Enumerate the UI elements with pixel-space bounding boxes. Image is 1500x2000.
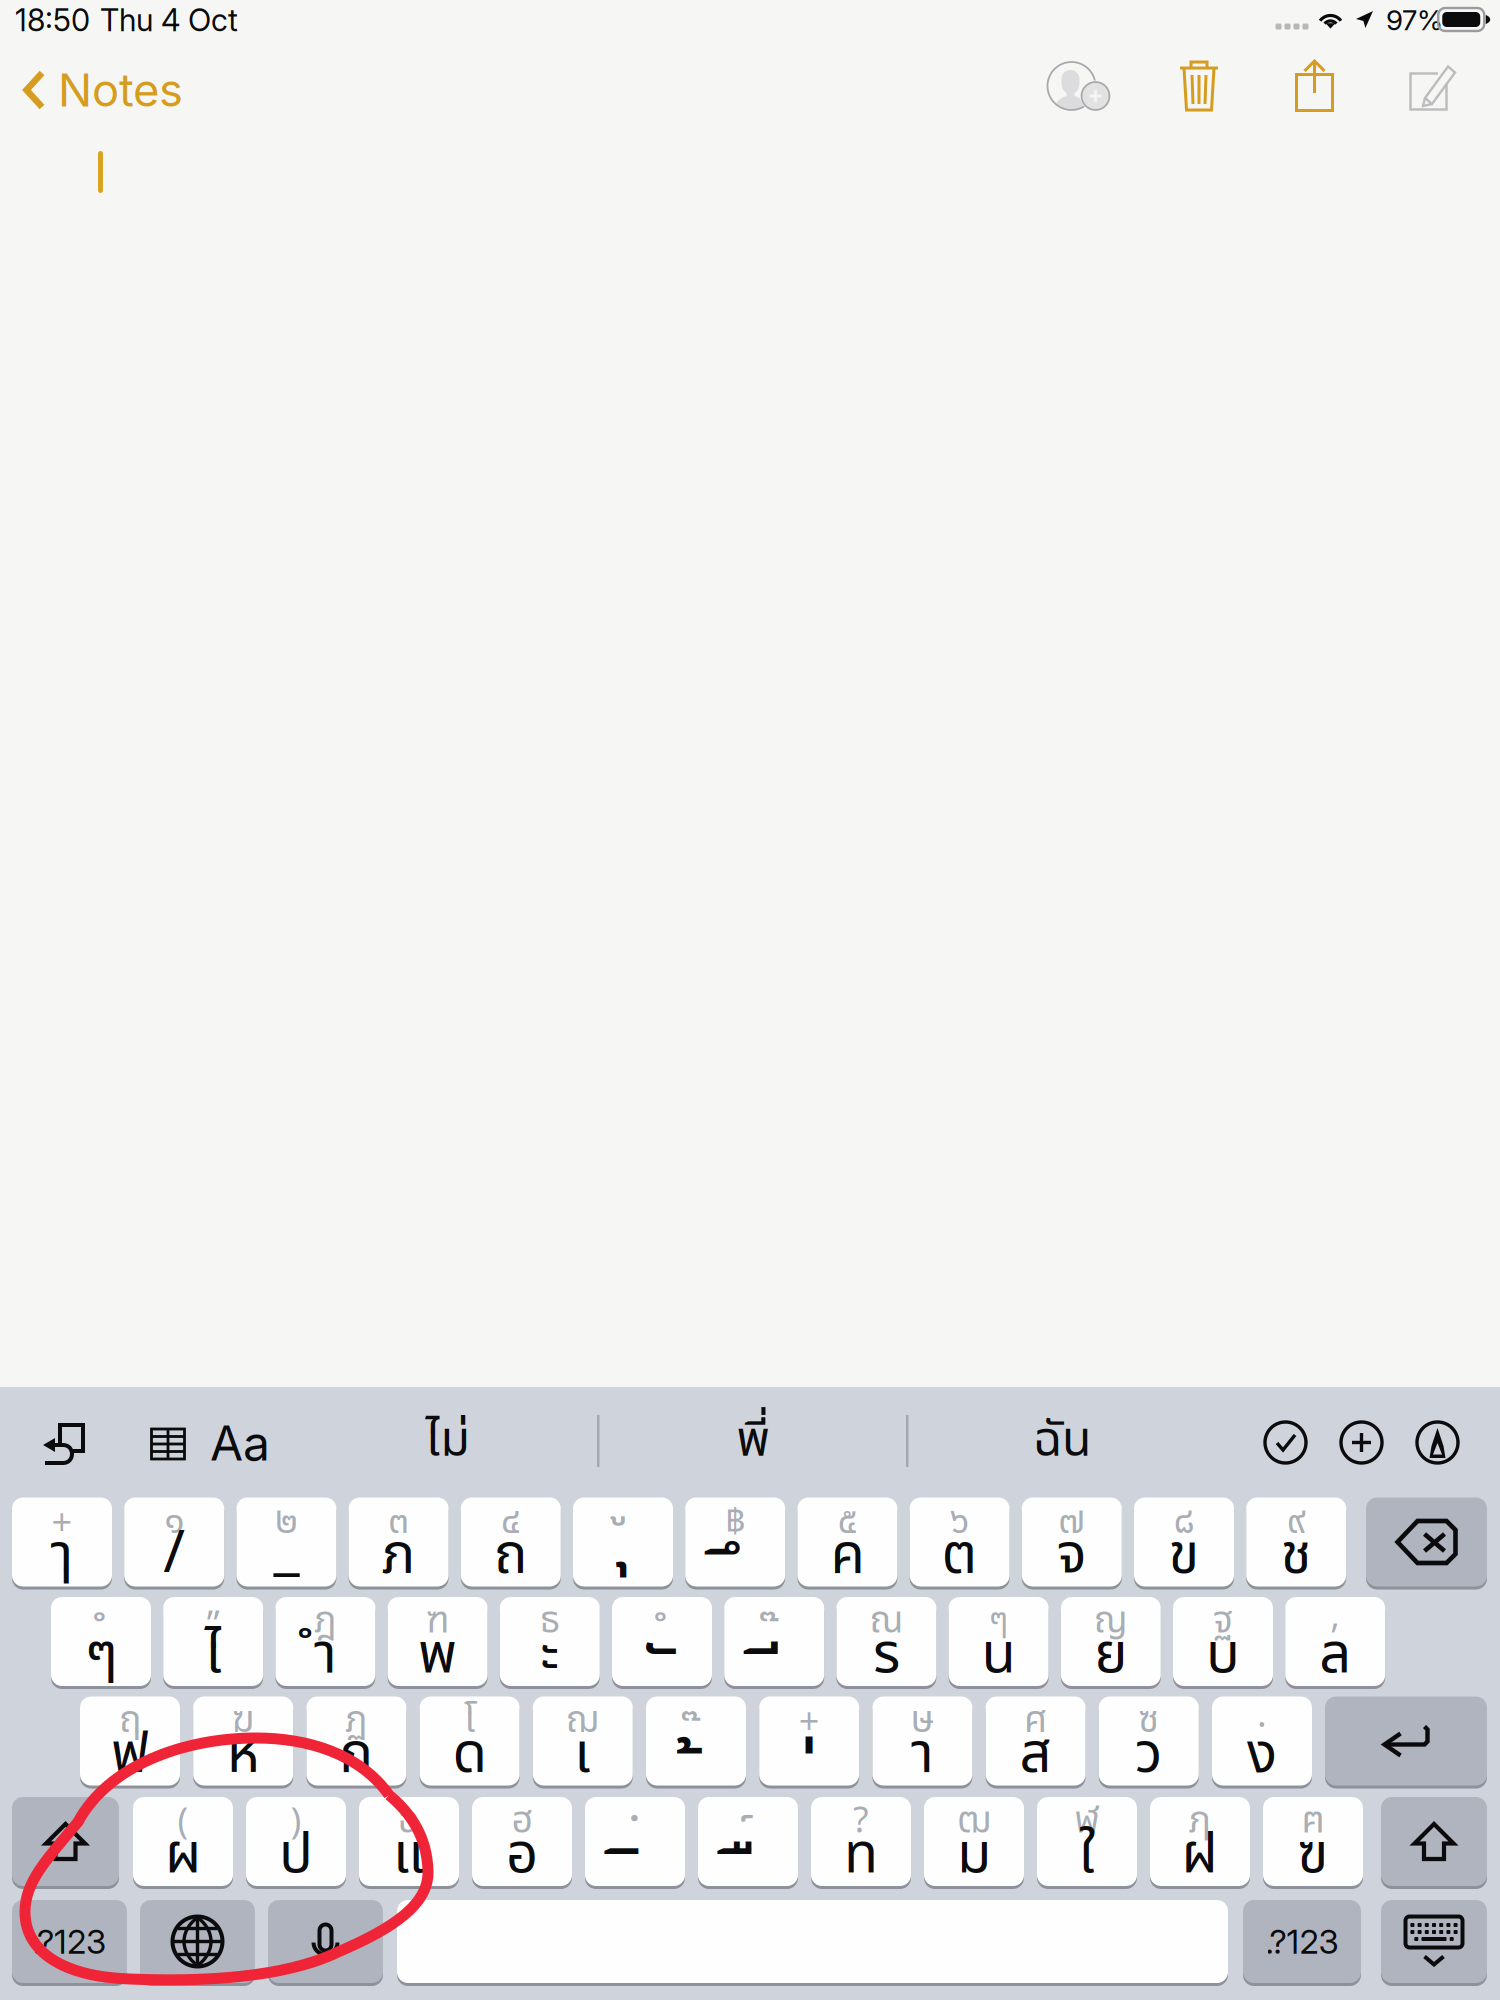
button[interactable]: ฝ [1150, 1797, 1250, 1886]
button[interactable]: ต [910, 1497, 1010, 1586]
staticText: ฮ [511, 1793, 532, 1849]
staticText: ฑ [426, 1593, 449, 1649]
button[interactable]: แ [359, 1797, 459, 1886]
staticText: ไ [205, 1613, 222, 1697]
button[interactable]: Numbers [1243, 1900, 1361, 1983]
staticText: ้ [685, 1720, 706, 1840]
button[interactable]: น [949, 1597, 1049, 1686]
button[interactable]: Table [150, 1426, 186, 1462]
button[interactable]: เ [533, 1696, 633, 1785]
staticText: พ [418, 1613, 457, 1697]
button[interactable]: Delete [1179, 60, 1219, 112]
staticText: ฎ [314, 1593, 337, 1649]
button[interactable]: พี่ [600, 1408, 906, 1474]
button[interactable]: Share [1295, 60, 1334, 112]
button[interactable]: ี [724, 1597, 824, 1686]
staticText: ) [290, 1795, 301, 1850]
button[interactable]: Undo [43, 1423, 85, 1465]
staticText: จ [1057, 1513, 1087, 1598]
button[interactable]: Checklist [1265, 1422, 1306, 1463]
staticText: ย [1094, 1613, 1127, 1697]
button[interactable]: Markup [1417, 1422, 1458, 1463]
button[interactable]: Text Format [210, 1420, 280, 1466]
button[interactable]: ย [1061, 1597, 1161, 1686]
button[interactable]: ค [797, 1497, 897, 1586]
button[interactable]: ำ [275, 1597, 375, 1686]
button[interactable]: ใ [1037, 1797, 1137, 1886]
staticText: ๊ [690, 1700, 702, 1772]
button[interactable]: พ [388, 1597, 488, 1686]
button[interactable]: ร [836, 1597, 936, 1686]
button[interactable]: / [124, 1497, 224, 1586]
button[interactable]: บ [1173, 1597, 1273, 1686]
button[interactable]: า [872, 1696, 972, 1785]
button[interactable]: Hide Keyboard [1381, 1900, 1487, 1983]
button[interactable]: ส [986, 1696, 1086, 1785]
button[interactable]: ไ [163, 1597, 263, 1686]
staticText: ๗ [1058, 1493, 1085, 1550]
staticText: ฤ [119, 1692, 141, 1749]
button[interactable]: Insert [1341, 1422, 1382, 1463]
staticText: ช [1281, 1513, 1312, 1598]
button[interactable]: ห [193, 1696, 293, 1785]
button[interactable]: ฃ [1263, 1797, 1363, 1886]
button[interactable]: ั [612, 1597, 712, 1686]
staticText: ่ [799, 1720, 820, 1840]
button[interactable]: ผ [133, 1797, 233, 1886]
staticText: _ [273, 1506, 299, 1594]
button[interactable]: Add People [1047, 62, 1111, 110]
staticText: ฐ [1213, 1593, 1233, 1649]
button[interactable]: Shift [1381, 1797, 1487, 1886]
button[interactable]: Shift [12, 1797, 119, 1886]
button[interactable]: ด [420, 1696, 520, 1785]
staticText: ๊ [768, 1600, 780, 1673]
staticText: ึ [725, 1521, 746, 1641]
button[interactable]: อ [472, 1797, 572, 1886]
button[interactable]: ว [1099, 1696, 1199, 1785]
button[interactable]: ข [1134, 1497, 1234, 1586]
button[interactable]: ก [306, 1696, 406, 1785]
button[interactable]: ะ [500, 1597, 600, 1686]
button[interactable]: ้ [646, 1696, 746, 1785]
button[interactable]: ุ [573, 1497, 673, 1586]
button[interactable]: ท [811, 1797, 911, 1886]
button[interactable]: _ [236, 1497, 336, 1586]
staticText: ณ [869, 1593, 903, 1649]
button[interactable]: ๅ [12, 1497, 112, 1586]
staticText: ิ [624, 1820, 645, 1941]
button[interactable]: ช [1246, 1497, 1346, 1586]
button[interactable]: ื [698, 1797, 798, 1886]
button[interactable]: ไม่ [300, 1408, 595, 1474]
button[interactable]: ึ [685, 1497, 785, 1586]
staticText: ํ [656, 1600, 668, 1673]
staticText: อ [506, 1813, 538, 1897]
button[interactable]: ป [246, 1797, 346, 1886]
button[interactable]: Space [397, 1900, 1228, 1983]
button[interactable]: Return [1325, 1696, 1487, 1785]
staticText: ์ [742, 1800, 754, 1873]
button[interactable]: Notes [22, 62, 202, 118]
button[interactable]: ๆ [51, 1597, 151, 1686]
staticText: ฅ [1301, 1793, 1324, 1849]
button[interactable]: Numbers [12, 1900, 127, 1983]
button[interactable]: Next Keyboard [140, 1900, 255, 1983]
staticText: ข [1168, 1513, 1199, 1598]
staticText: ั [651, 1620, 672, 1741]
button[interactable]: ม [924, 1797, 1024, 1886]
button[interactable]: Delete [1366, 1497, 1487, 1586]
staticText: ญ [1094, 1593, 1128, 1649]
button[interactable]: Dictate [268, 1900, 383, 1983]
button[interactable]: ล [1285, 1597, 1385, 1686]
button[interactable]: จ [1022, 1497, 1122, 1586]
button[interactable]: ง [1212, 1696, 1312, 1785]
button[interactable]: ถ [461, 1497, 561, 1586]
button[interactable]: ่ [759, 1696, 859, 1785]
button[interactable]: New Note [1409, 64, 1457, 112]
staticText: ใ [1079, 1813, 1095, 1897]
button[interactable]: ฉัน [909, 1408, 1215, 1474]
staticText: , [1330, 1589, 1340, 1644]
button[interactable]: ิ [585, 1797, 685, 1886]
staticText: น [982, 1613, 1016, 1697]
button[interactable]: ภ [349, 1497, 449, 1586]
button[interactable]: ฟ [80, 1696, 180, 1785]
